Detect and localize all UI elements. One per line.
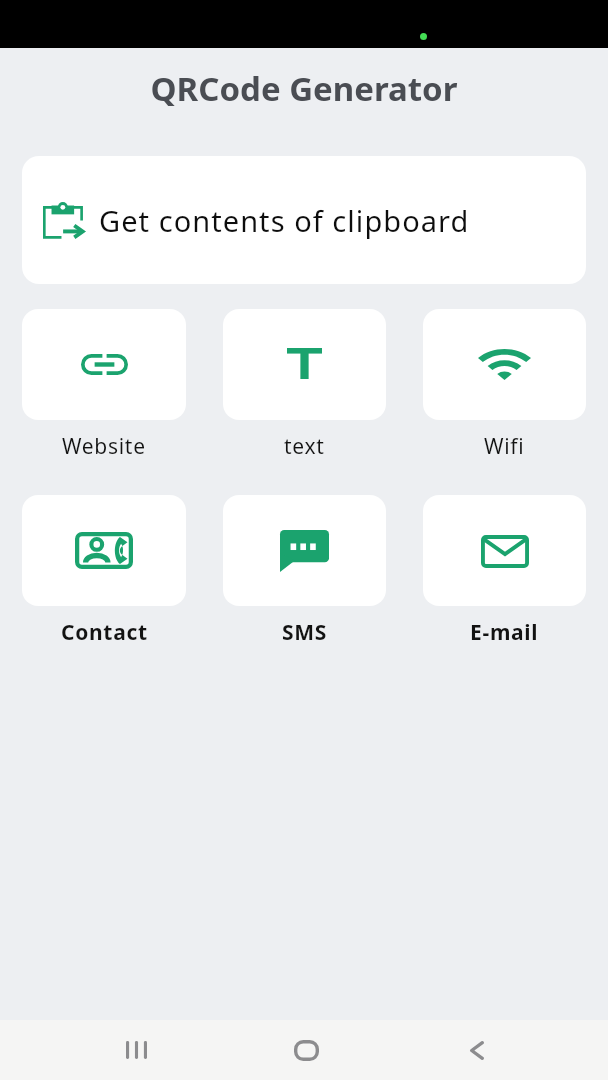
button[interactable]: Wifi bbox=[423, 309, 586, 420]
staticText: Contact bbox=[61, 618, 148, 647]
button[interactable]: Website bbox=[22, 309, 186, 420]
button[interactable]: Recents bbox=[91, 1026, 181, 1074]
staticText: QRCode Generator bbox=[0, 66, 608, 111]
button[interactable]: Back bbox=[432, 1026, 522, 1074]
staticText: E-mail bbox=[470, 618, 539, 647]
staticText: Website bbox=[62, 432, 146, 461]
staticText: SMS bbox=[282, 618, 328, 647]
staticText: Wifi bbox=[484, 432, 525, 461]
button[interactable]: Get contents of clipboard bbox=[22, 156, 586, 284]
button[interactable]: Home bbox=[261, 1026, 351, 1074]
staticText: text bbox=[284, 432, 325, 461]
button[interactable]: text bbox=[223, 309, 386, 420]
button[interactable]: Contact bbox=[22, 495, 186, 606]
button[interactable]: E-mail bbox=[423, 495, 586, 606]
staticText: Get contents of clipboard bbox=[99, 201, 470, 240]
button[interactable]: SMS bbox=[223, 495, 386, 606]
